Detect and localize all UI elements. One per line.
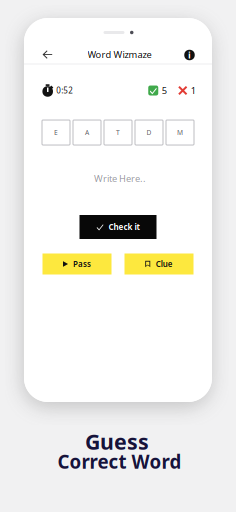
button[interactable]: Pass bbox=[42, 253, 111, 274]
staticText: Clue bbox=[156, 259, 173, 269]
staticText: Word Wizmaze bbox=[87, 48, 151, 61]
staticText: Pass bbox=[73, 259, 91, 269]
staticText: 1 bbox=[191, 84, 196, 97]
button[interactable]: Clue bbox=[124, 253, 193, 274]
button[interactable]: Check it bbox=[79, 215, 156, 239]
staticText: Check it bbox=[108, 222, 139, 232]
staticText: 0:52 bbox=[56, 85, 73, 96]
button[interactable]: Back bbox=[37, 45, 57, 63]
button[interactable]: Info bbox=[180, 46, 198, 64]
staticText: Write Here.. bbox=[94, 172, 146, 185]
staticText: D bbox=[146, 128, 151, 137]
staticText: E bbox=[54, 128, 58, 137]
staticText: M bbox=[177, 128, 183, 137]
staticText: T bbox=[116, 128, 120, 137]
staticText: Guess bbox=[85, 427, 149, 456]
staticText: i bbox=[188, 49, 191, 61]
staticText: Correct Word bbox=[57, 449, 181, 474]
staticText: A bbox=[85, 128, 89, 137]
staticText: 5 bbox=[162, 84, 167, 97]
